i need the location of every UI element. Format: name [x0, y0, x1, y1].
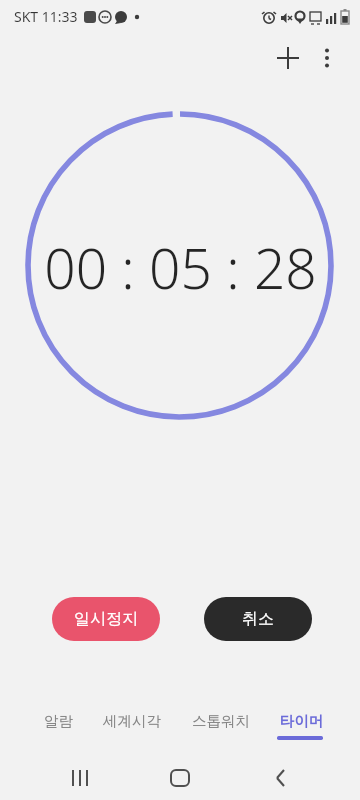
button[interactable] [160, 755, 200, 800]
button[interactable]: 알람 [44, 712, 73, 730]
button[interactable] [260, 755, 300, 800]
staticText: 일시정지 [74, 609, 138, 629]
button[interactable]: 취소 [204, 597, 312, 641]
button[interactable]: 스톱워치 [192, 712, 250, 730]
button[interactable] [60, 755, 100, 800]
button[interactable]: 일시정지 [52, 597, 160, 641]
button[interactable] [307, 38, 347, 78]
button[interactable]: 타이머 [280, 712, 324, 730]
button[interactable]: 세계시각 [103, 712, 161, 730]
staticText: SKT 11:33 [14, 7, 78, 26]
button[interactable] [268, 38, 308, 78]
staticText: 취소 [242, 609, 274, 629]
staticText: 00 : 05 : 28 [44, 230, 317, 305]
